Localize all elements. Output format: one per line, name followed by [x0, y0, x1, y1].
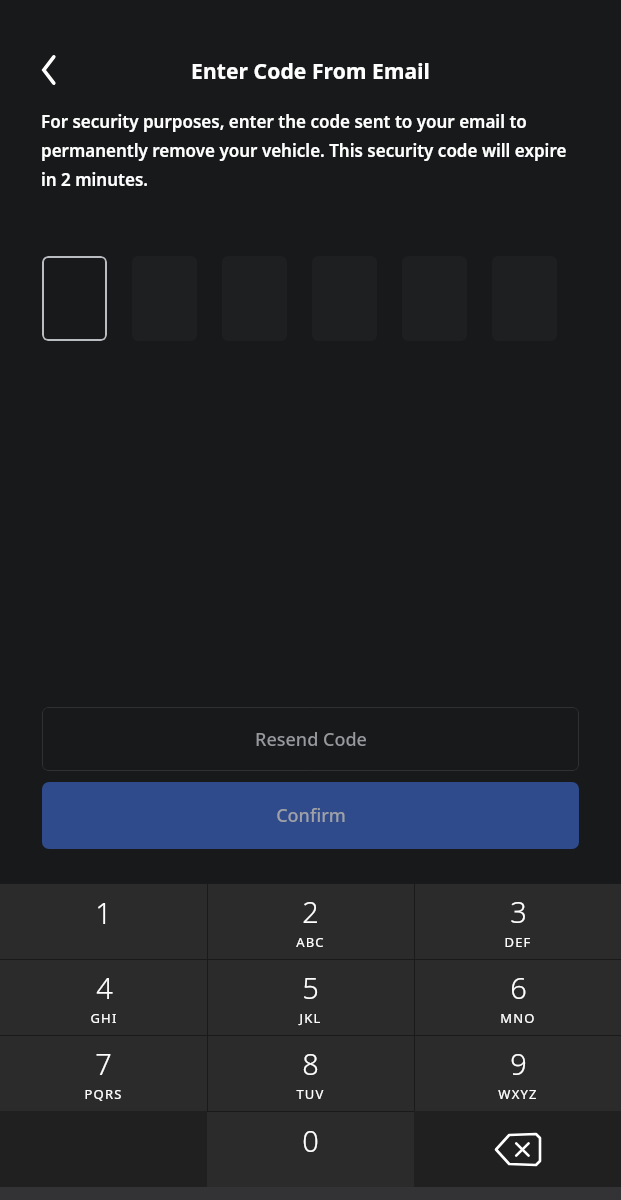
button[interactable]: Code digit 1	[42, 256, 107, 341]
staticText: ABC	[296, 933, 325, 951]
button[interactable]: 1	[0, 883, 207, 959]
staticText: For security purposes, enter the code se…	[41, 110, 585, 191]
staticText: TUV	[296, 1085, 325, 1103]
staticText: MNO	[500, 1009, 536, 1027]
staticText: 7	[95, 1044, 112, 1083]
staticText: Enter Code From Email	[191, 57, 430, 86]
button[interactable]: Back	[22, 43, 76, 97]
button[interactable]: Backspace	[414, 1111, 621, 1187]
button[interactable]: 4 GHI	[0, 959, 207, 1035]
staticText: 0	[302, 1121, 319, 1160]
staticText: GHI	[90, 1009, 118, 1027]
staticText: JKL	[299, 1009, 322, 1027]
button[interactable]: 7 PQRS	[0, 1035, 207, 1111]
button[interactable]: 2 ABC	[207, 883, 414, 959]
button[interactable]: Confirm	[42, 782, 579, 849]
button[interactable]: 5 JKL	[207, 959, 414, 1035]
staticText: 6	[510, 968, 527, 1007]
button[interactable]: 9 WXYZ	[414, 1035, 621, 1111]
staticText: 5	[302, 968, 319, 1007]
staticText: 1	[95, 893, 112, 932]
button[interactable]: 0	[207, 1111, 414, 1187]
staticText: DEF	[504, 933, 532, 951]
staticText: 3	[510, 892, 527, 931]
button[interactable]: Resend Code	[42, 707, 579, 771]
button[interactable]: 6 MNO	[414, 959, 621, 1035]
staticText: 9	[510, 1044, 527, 1083]
button[interactable]: 3 DEF	[414, 883, 621, 959]
staticText: Confirm	[276, 803, 346, 828]
staticText: Resend Code	[255, 727, 367, 752]
button[interactable]: 8 TUV	[207, 1035, 414, 1111]
staticText: 2	[302, 892, 319, 931]
staticText: WXYZ	[498, 1085, 538, 1103]
staticText: 4	[96, 968, 113, 1007]
staticText: PQRS	[84, 1085, 123, 1103]
staticText: 8	[302, 1044, 319, 1083]
